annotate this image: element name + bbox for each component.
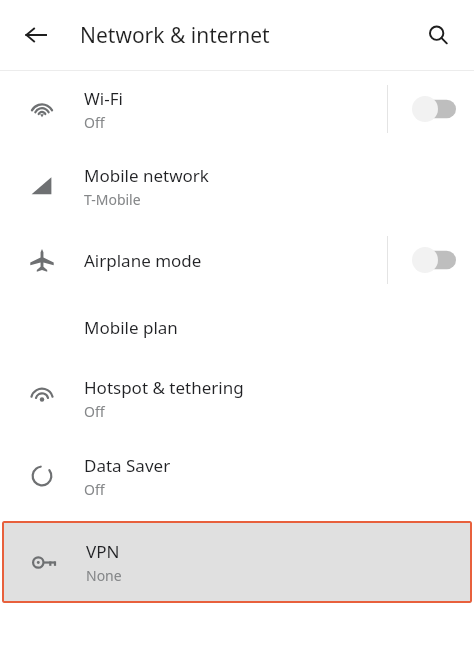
button[interactable]: Hotspot & tethering: [0, 359, 474, 437]
button[interactable]: Toggle: [412, 96, 456, 122]
staticText: Off: [84, 113, 105, 132]
button[interactable]: Search: [416, 13, 460, 57]
staticText: None: [86, 566, 122, 585]
staticText: Off: [84, 402, 105, 421]
button[interactable]: Back: [12, 11, 60, 59]
staticText: Hotspot & tethering: [84, 376, 244, 399]
staticText: Network & internet: [80, 21, 416, 50]
button[interactable]: Mobile plan: [0, 295, 474, 359]
button[interactable]: Wi-Fi: [0, 71, 474, 147]
staticText: Mobile plan: [84, 316, 178, 339]
button[interactable]: Toggle: [412, 247, 456, 273]
button[interactable]: VPN: [2, 521, 472, 603]
button[interactable]: Airplane mode: [0, 225, 474, 295]
staticText: Mobile network: [84, 164, 209, 187]
staticText: Data Saver: [84, 454, 171, 477]
staticText: Wi-Fi: [84, 87, 123, 110]
button[interactable]: Data Saver: [0, 437, 474, 515]
staticText: T-Mobile: [84, 190, 141, 209]
button[interactable]: Mobile network: [0, 147, 474, 225]
staticText: VPN: [86, 540, 120, 563]
staticText: Off: [84, 480, 105, 499]
staticText: Airplane mode: [84, 249, 202, 272]
